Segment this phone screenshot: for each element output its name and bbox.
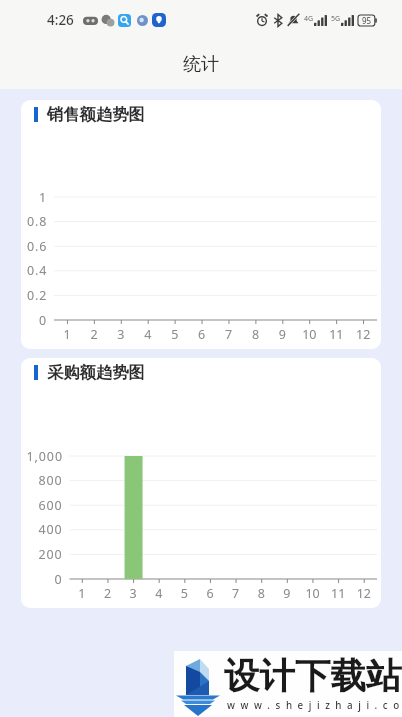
staticText: 统计 bbox=[183, 53, 219, 76]
staticText: 4G bbox=[304, 14, 314, 24]
staticText: 95 bbox=[362, 15, 372, 26]
staticText: w w w . s h e j i z h a j i . c o m bbox=[227, 699, 402, 712]
staticText: 采购额趋势图 bbox=[47, 362, 145, 383]
staticText: 销售额趋势图 bbox=[47, 104, 145, 125]
button[interactable]: 采购额趋势图 bbox=[21, 358, 381, 608]
staticText: 4:26 bbox=[47, 11, 74, 29]
button[interactable]: 销售额趋势图 bbox=[21, 100, 381, 349]
staticText: 5G bbox=[331, 14, 341, 24]
staticText: 设计下载站 bbox=[224, 654, 402, 699]
